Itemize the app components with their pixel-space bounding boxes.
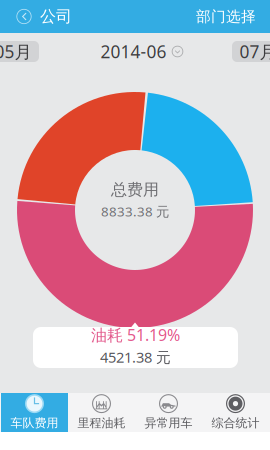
button[interactable]: 综合统计	[202, 393, 269, 432]
staticText: 油耗 51.19%	[91, 324, 180, 345]
button[interactable]: 07月	[232, 41, 270, 62]
staticText: 公司	[40, 7, 72, 26]
button[interactable]: 05月	[0, 41, 39, 62]
staticText: 2014-06	[100, 40, 166, 63]
staticText: 07月	[239, 40, 270, 63]
staticText: 总费用	[111, 180, 159, 199]
staticText: 里程油耗	[77, 416, 125, 430]
staticText: 8833.38 元	[101, 202, 169, 220]
staticText: 4521.38 元	[100, 347, 171, 367]
button[interactable]: 部门选择	[182, 0, 270, 33]
button[interactable]: 里程油耗	[68, 393, 135, 432]
staticText: 异常用车	[144, 416, 192, 430]
button[interactable]: 车队费用	[1, 393, 68, 432]
staticText: 综合统计	[211, 416, 259, 430]
button[interactable]: 异常用车	[135, 393, 202, 432]
button[interactable]: 公司	[0, 0, 80, 33]
button[interactable]: 2014-06	[92, 41, 192, 62]
staticText: 05月	[0, 40, 31, 63]
staticText: 部门选择	[196, 7, 256, 25]
staticText: 车队费用	[10, 416, 58, 430]
